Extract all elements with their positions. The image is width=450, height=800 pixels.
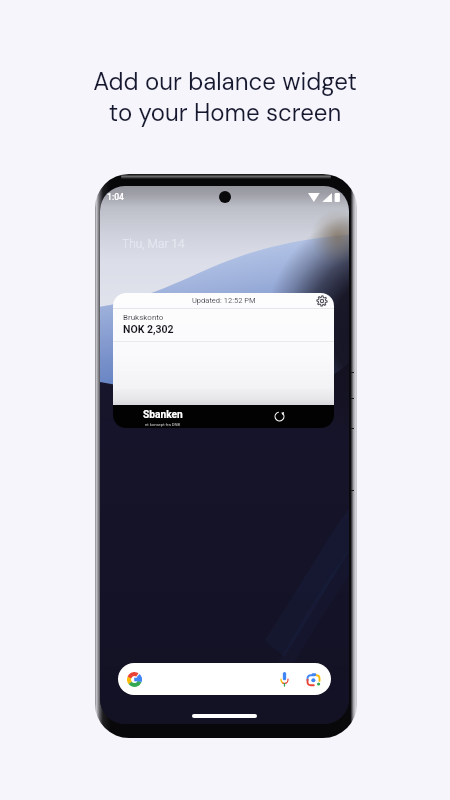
button[interactable]: Search	[118, 663, 331, 695]
staticText: NOK 2,302	[123, 323, 174, 335]
button[interactable]: Refresh balance	[272, 410, 287, 423]
staticText: 1:04	[107, 192, 124, 202]
staticText: Updated: 12:52 PM	[192, 296, 256, 305]
button[interactable]: Widget settings	[316, 295, 328, 307]
staticText: Add our balance widget to your Home scre…	[93, 66, 357, 128]
button[interactable]: Updated: 12:52 PM	[113, 293, 334, 428]
staticText: Sbanken	[143, 409, 183, 421]
staticText: Brukskonto	[123, 313, 164, 322]
staticText: et konsept fra DNB	[145, 422, 181, 427]
button[interactable]: Sbanken	[143, 409, 183, 427]
staticText: Thu, Mar 14	[122, 237, 185, 251]
